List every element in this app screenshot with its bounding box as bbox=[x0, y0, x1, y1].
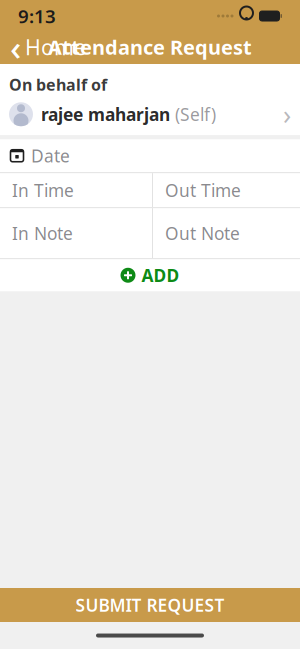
button[interactable]: Out Note bbox=[153, 208, 300, 258]
staticText: ‹ bbox=[10, 24, 21, 70]
button[interactable]: Date bbox=[0, 139, 300, 172]
staticText: Attendance Request bbox=[48, 34, 252, 60]
button[interactable]: Out Time bbox=[153, 173, 300, 207]
staticText: On behalf of bbox=[9, 74, 107, 95]
staticText: › bbox=[283, 96, 291, 132]
staticText: In Time bbox=[12, 179, 74, 202]
button[interactable]: rajee maharjan bbox=[0, 99, 300, 129]
staticText: In Note bbox=[12, 222, 73, 245]
staticText: Date bbox=[31, 144, 70, 167]
staticText: Out Note bbox=[165, 222, 240, 245]
staticText: rajee maharjan bbox=[41, 103, 170, 126]
staticText: Home bbox=[25, 33, 86, 61]
button[interactable]: SUBMIT REQUEST bbox=[0, 588, 300, 622]
button[interactable]: ADD bbox=[0, 259, 300, 291]
button[interactable]: ‹ bbox=[0, 32, 96, 62]
staticText: 9:13 bbox=[18, 4, 56, 28]
staticText: SUBMIT REQUEST bbox=[75, 593, 224, 616]
staticText: Out Time bbox=[165, 179, 241, 202]
staticText: (Self) bbox=[170, 103, 216, 126]
staticText: ADD bbox=[141, 264, 179, 287]
button[interactable]: In Time bbox=[0, 173, 152, 207]
button[interactable]: In Note bbox=[0, 208, 152, 258]
